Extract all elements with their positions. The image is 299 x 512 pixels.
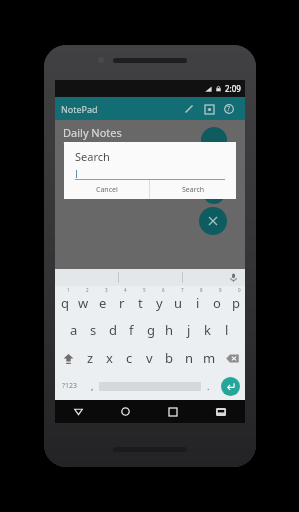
button[interactable]: . [201,372,215,400]
staticText: q [61,294,69,312]
button[interactable]: 9 [207,286,226,316]
button[interactable]: Add [201,127,227,153]
staticText: w [78,294,89,312]
button[interactable]: d [103,316,122,344]
button[interactable]: g [141,316,160,344]
staticText: Search [182,185,205,195]
staticText: e [99,294,107,312]
staticText: j [187,321,191,339]
staticText: 0 [238,287,241,293]
button[interactable]: ?123 [55,372,85,400]
button[interactable]: a [64,316,84,344]
button[interactable]: 1 [55,286,74,316]
staticText: y [156,294,163,312]
staticText: s [90,321,97,339]
staticText: . [207,380,210,392]
staticText: 4 [124,287,127,293]
staticText: Cancel [96,185,118,195]
staticText: v [146,349,153,367]
button[interactable]: Recents [149,400,197,423]
staticText: x [106,349,113,367]
button[interactable]: l [217,316,236,344]
staticText: z [87,349,94,367]
button[interactable]: 8 [188,286,207,316]
staticText: i [196,294,200,312]
staticText: , [91,380,94,392]
button[interactable]: 0 [226,286,245,316]
staticText: 1 [67,287,70,293]
staticText: b [165,349,173,367]
button[interactable]: Edit [179,99,199,119]
button[interactable]: v [139,344,159,372]
button[interactable]: k [198,316,217,344]
button[interactable]: Back [55,400,102,423]
button[interactable]: 2 [74,286,93,316]
staticText: 6 [162,287,165,293]
staticText: Daily Notes [63,125,122,140]
button[interactable]: c [119,344,139,372]
button[interactable]: Search [150,180,236,199]
button[interactable]: s [84,316,103,344]
staticText: Search [75,149,110,164]
staticText: u [174,294,183,312]
button[interactable]: Close [199,207,227,235]
staticText: l [225,321,229,339]
button[interactable]: 4 [112,286,131,316]
staticText: o [213,294,221,312]
button[interactable]: b [159,344,179,372]
staticText: 2 [86,287,89,293]
button[interactable]: Help [219,99,239,119]
staticText: r [119,294,125,312]
button[interactable]: Shift [55,344,81,372]
staticText: a [70,321,78,339]
button[interactable]: f [122,316,141,344]
button[interactable]: Backspace [219,344,245,372]
staticText: f [129,321,134,339]
staticText: h [165,321,174,339]
staticText: k [204,321,211,339]
staticText: NotePad [61,103,98,115]
staticText: 5 [143,287,146,293]
staticText: 7 [181,287,184,293]
button[interactable]: 7 [169,286,188,316]
staticText: c [126,349,133,367]
button[interactable]: , [85,372,99,400]
button[interactable]: Home [102,400,149,423]
button[interactable]: h [160,316,179,344]
staticText: p [232,294,240,312]
button[interactable]: z [81,344,100,372]
button[interactable]: 6 [150,286,169,316]
staticText: 2:09 [225,83,241,94]
button[interactable]: 5 [131,286,150,316]
button[interactable]: j [179,316,198,344]
button[interactable]: m [199,344,219,372]
button[interactable]: x [100,344,119,372]
button[interactable]: n [179,344,199,372]
staticText: ? [227,104,231,114]
staticText: n [185,349,194,367]
staticText: 3 [105,287,108,293]
button[interactable]: 3 [93,286,112,316]
button[interactable]: Settings [199,99,219,119]
other: Voice input [229,273,238,282]
staticText: m [203,349,216,367]
button[interactable]: Refresh [203,182,225,204]
staticText: 17-02-2016 02:00 [63,141,112,149]
staticText: g [147,321,155,339]
button[interactable]: Cancel [64,180,149,199]
button[interactable]: Enter [215,372,245,400]
staticText: t [138,294,143,312]
staticText: 9 [219,287,222,293]
staticText: 8 [200,287,203,293]
staticText: d [109,321,117,339]
button[interactable]: Keyboard [197,400,245,423]
staticText: ?123 [62,381,78,391]
